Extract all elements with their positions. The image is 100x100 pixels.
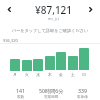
button[interactable]: 50時間6分 xyxy=(36,87,67,100)
button[interactable] xyxy=(33,59,43,71)
staticText: 売り上げ xyxy=(48,17,60,21)
staticText: 141 xyxy=(16,87,25,94)
button[interactable]: Back xyxy=(0,0,18,18)
staticText: 客数 xyxy=(17,95,25,100)
button[interactable]: ¥87,121 xyxy=(4,3,100,21)
staticText: 営業時間 xyxy=(44,95,59,100)
button[interactable] xyxy=(68,56,78,70)
button[interactable] xyxy=(10,59,20,71)
staticText: バーをタップして詳細をご確認ください xyxy=(0,28,100,33)
staticText: 木 xyxy=(45,72,55,77)
staticText: 金 xyxy=(56,72,66,77)
staticText: 火 xyxy=(22,72,32,77)
staticText: 日 xyxy=(79,72,89,77)
button[interactable]: 339 xyxy=(67,87,98,100)
button[interactable] xyxy=(22,60,32,71)
button[interactable]: 141 xyxy=(5,87,36,100)
staticText: 50時間6分 xyxy=(39,87,64,94)
staticText: 客単価 xyxy=(77,95,88,100)
staticText: 土 xyxy=(68,72,78,77)
staticText: 月 xyxy=(10,72,20,77)
button[interactable] xyxy=(56,52,66,70)
button[interactable] xyxy=(79,48,89,70)
staticText: ¥87,121 xyxy=(35,3,73,17)
staticText: 339 xyxy=(78,87,87,94)
button[interactable] xyxy=(45,56,55,70)
button[interactable]: Next period xyxy=(81,0,99,18)
staticText: ¥36,320 xyxy=(3,38,18,43)
staticText: 水 xyxy=(33,72,43,77)
